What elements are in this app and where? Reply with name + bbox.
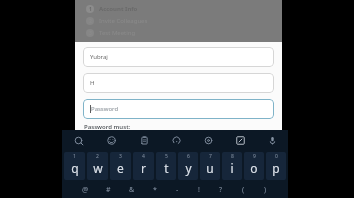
staticText: t (164, 160, 169, 176)
staticText: 0 (275, 153, 278, 160)
staticText: 3 (119, 153, 122, 160)
button[interactable]: Search (62, 130, 95, 150)
button[interactable]: * (143, 183, 166, 197)
staticText: y (185, 160, 192, 176)
button[interactable]: Yubraj (83, 47, 274, 67)
button[interactable]: 2 (87, 152, 108, 180)
staticText: 2 (96, 153, 99, 160)
staticText: - (176, 185, 179, 195)
staticText: 6 (187, 153, 190, 160)
staticText: 5 (165, 153, 168, 160)
button[interactable]: 1 (86, 3, 138, 15)
staticText: ? (219, 185, 223, 195)
button[interactable]: ? (210, 183, 232, 197)
staticText: 9 (253, 153, 256, 160)
button[interactable]: ) (254, 183, 276, 197)
button[interactable]: & (120, 183, 143, 197)
button[interactable]: Password (83, 99, 274, 119)
button[interactable]: 2 (86, 15, 148, 27)
staticText: r (141, 160, 146, 176)
button[interactable]: 4 (133, 152, 154, 180)
staticText: * (153, 185, 157, 195)
button[interactable]: 3 (110, 152, 131, 180)
button[interactable]: 6 (178, 152, 198, 180)
staticText: ) (264, 185, 267, 195)
staticText: @ (82, 185, 89, 195)
staticText: ! (198, 185, 200, 195)
button[interactable]: Voice input (256, 130, 288, 150)
staticText: # (106, 185, 111, 195)
staticText: 1 (89, 6, 92, 13)
staticText: Password (91, 105, 119, 113)
button[interactable]: Themes (160, 130, 192, 150)
button[interactable]: 9 (244, 152, 264, 180)
button[interactable]: 5 (156, 152, 176, 180)
staticText: Account Info (99, 5, 138, 13)
staticText: o (250, 160, 258, 176)
staticText: Invite Colleagues (99, 17, 148, 25)
button[interactable]: 8 (222, 152, 242, 180)
staticText: i (230, 160, 234, 176)
staticText: 4 (142, 153, 145, 160)
button[interactable]: 7 (200, 152, 220, 180)
button[interactable]: ! (188, 183, 210, 197)
button[interactable]: H (83, 73, 274, 93)
staticText: Password must: (84, 123, 131, 130)
staticText: Yubraj (90, 53, 108, 61)
staticText: q (71, 160, 79, 176)
button[interactable]: - (166, 183, 188, 197)
button[interactable]: 1 (64, 152, 85, 180)
staticText: e (117, 160, 124, 176)
staticText: ( (242, 185, 245, 195)
staticText: p (272, 160, 280, 176)
staticText: Test Meeting (99, 29, 136, 37)
staticText: & (129, 185, 135, 195)
button[interactable]: Translate (224, 130, 256, 150)
staticText: u (206, 160, 214, 176)
button[interactable]: ( (232, 183, 254, 197)
button[interactable]: Clipboard (128, 130, 160, 150)
staticText: 7 (209, 153, 212, 160)
staticText: w (93, 160, 103, 176)
button[interactable]: 0 (266, 152, 286, 180)
button[interactable]: @ (74, 183, 97, 197)
staticText: 1 (73, 153, 76, 160)
staticText: H (90, 79, 95, 87)
button[interactable]: Settings (192, 130, 224, 150)
button[interactable]: 3 (86, 27, 136, 39)
staticText: 8 (231, 153, 234, 160)
button[interactable]: Emoji (95, 130, 128, 150)
button[interactable]: # (97, 183, 120, 197)
